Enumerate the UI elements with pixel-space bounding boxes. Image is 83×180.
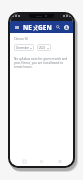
staticText: 2023 [39, 46, 46, 50]
staticText: No syllabus exist for given month and ye… [14, 57, 69, 69]
button[interactable]: Back [56, 158, 63, 165]
button[interactable]: 2023 [37, 44, 51, 51]
staticText: Classes (0) [14, 37, 29, 41]
button[interactable]: Search [55, 24, 61, 30]
button[interactable]: Open navigation menu [13, 24, 20, 31]
button[interactable]: Account [62, 23, 70, 31]
staticText: GEN [38, 23, 52, 32]
staticText: December [16, 46, 30, 50]
button[interactable]: Home [38, 158, 45, 165]
button[interactable]: Recent apps [21, 158, 28, 165]
staticText: NE [23, 23, 33, 32]
button[interactable]: December [14, 44, 34, 51]
